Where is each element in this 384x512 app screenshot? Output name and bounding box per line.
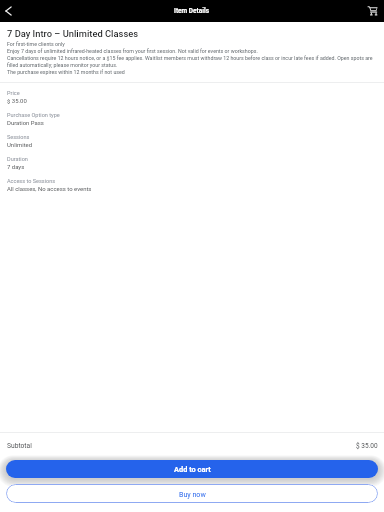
staticText: Item Details: [174, 7, 210, 15]
staticText: Duration Pass: [7, 119, 44, 126]
staticText: Sessions: [7, 134, 30, 141]
staticText: $ 35.00: [356, 442, 378, 450]
staticText: Buy now: [179, 490, 206, 498]
staticText: Price: [7, 90, 20, 97]
staticText: Subtotal: [7, 442, 32, 450]
button[interactable]: Buy now: [6, 484, 378, 503]
staticText: $ 35.00: [7, 97, 27, 104]
staticText: Access to Sessions: [7, 178, 56, 185]
staticText: 7 days: [7, 163, 25, 170]
button[interactable]: Add to cart: [6, 460, 378, 478]
staticText: 7 Day Intro – Unlimited Classes: [7, 29, 139, 40]
button[interactable]: Shopping cart: [362, 0, 384, 22]
button[interactable]: Back: [0, 0, 22, 22]
staticText: For first-time clients only Enjoy 7 days…: [7, 40, 377, 75]
staticText: Duration: [7, 156, 28, 163]
staticText: Unlimited: [7, 141, 33, 148]
staticText: All classes, No access to events: [7, 185, 92, 192]
staticText: Add to cart: [174, 465, 211, 474]
staticText: Purchase Option type: [7, 112, 60, 119]
